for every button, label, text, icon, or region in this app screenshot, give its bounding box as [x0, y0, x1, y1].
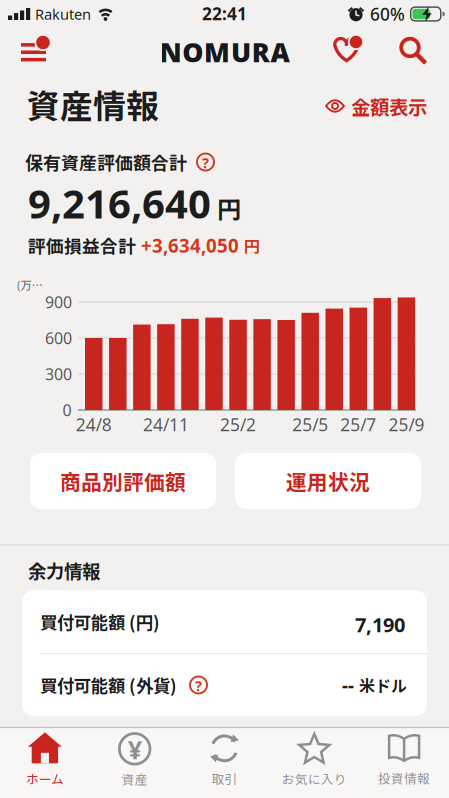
staticText: 保有資産評価額合計	[25, 149, 187, 175]
button[interactable]: 金額表示	[325, 92, 427, 120]
staticText: --	[342, 673, 354, 697]
staticText: 取引	[211, 769, 237, 788]
staticText: 60%	[370, 2, 405, 25]
button[interactable]: お気に入り	[269, 728, 359, 792]
staticText: 資産情報	[27, 80, 159, 128]
button[interactable]: 取引	[180, 728, 269, 792]
staticText: NOMURA	[159, 34, 289, 70]
staticText: 商品別評価額	[60, 466, 186, 496]
staticText: Rakuten	[35, 4, 91, 24]
staticText: +3,634,050	[141, 233, 239, 258]
button[interactable]: 投資情報	[359, 728, 449, 792]
staticText: 買付可能額 (外貨)	[40, 672, 177, 698]
staticText: 金額表示	[351, 92, 427, 120]
staticText: 円	[244, 234, 260, 257]
button[interactable]: 買付可能額 (円)	[22, 590, 427, 653]
button[interactable]: 運用状況	[235, 453, 421, 509]
staticText: 9,216,640	[28, 176, 211, 229]
staticText: 資産	[122, 770, 148, 788]
button[interactable]: 買付可能額 (外貨)	[22, 654, 427, 716]
staticText: 24/8	[76, 413, 112, 436]
button[interactable]: 商品別評価額	[30, 453, 216, 509]
button[interactable]	[400, 37, 428, 65]
staticText: ?	[202, 153, 209, 172]
staticText: 24/11	[143, 413, 189, 436]
staticText: 余力情報	[28, 557, 100, 584]
staticText: 22:41	[202, 2, 247, 25]
staticText: 300	[45, 363, 72, 385]
staticText: 7,190	[355, 611, 405, 638]
staticText: 25/9	[388, 413, 424, 436]
staticText: 900	[45, 291, 72, 313]
staticText: 0	[62, 399, 71, 421]
staticText: 600	[45, 327, 72, 349]
staticText: 評価損益合計	[28, 232, 136, 258]
staticText: ?	[195, 676, 202, 695]
button[interactable]: ¥	[90, 728, 180, 792]
staticText: 25/5	[292, 413, 328, 436]
staticText: ホーム	[26, 769, 64, 788]
staticText: 買付可能額 (円)	[40, 609, 160, 634]
staticText: ¥	[128, 732, 142, 766]
button[interactable]	[333, 36, 364, 64]
button[interactable]: ?	[196, 152, 215, 171]
staticText: (万…	[16, 276, 42, 293]
staticText: 25/7	[340, 413, 376, 436]
staticText: 投資情報	[378, 769, 430, 787]
button[interactable]: ホーム	[0, 728, 90, 792]
staticText: 運用状況	[286, 466, 370, 496]
staticText: 円	[217, 191, 241, 225]
staticText: 米ドル	[359, 673, 407, 697]
button[interactable]	[21, 35, 52, 63]
staticText: お気に入り	[282, 769, 347, 788]
staticText: 25/2	[220, 413, 256, 436]
